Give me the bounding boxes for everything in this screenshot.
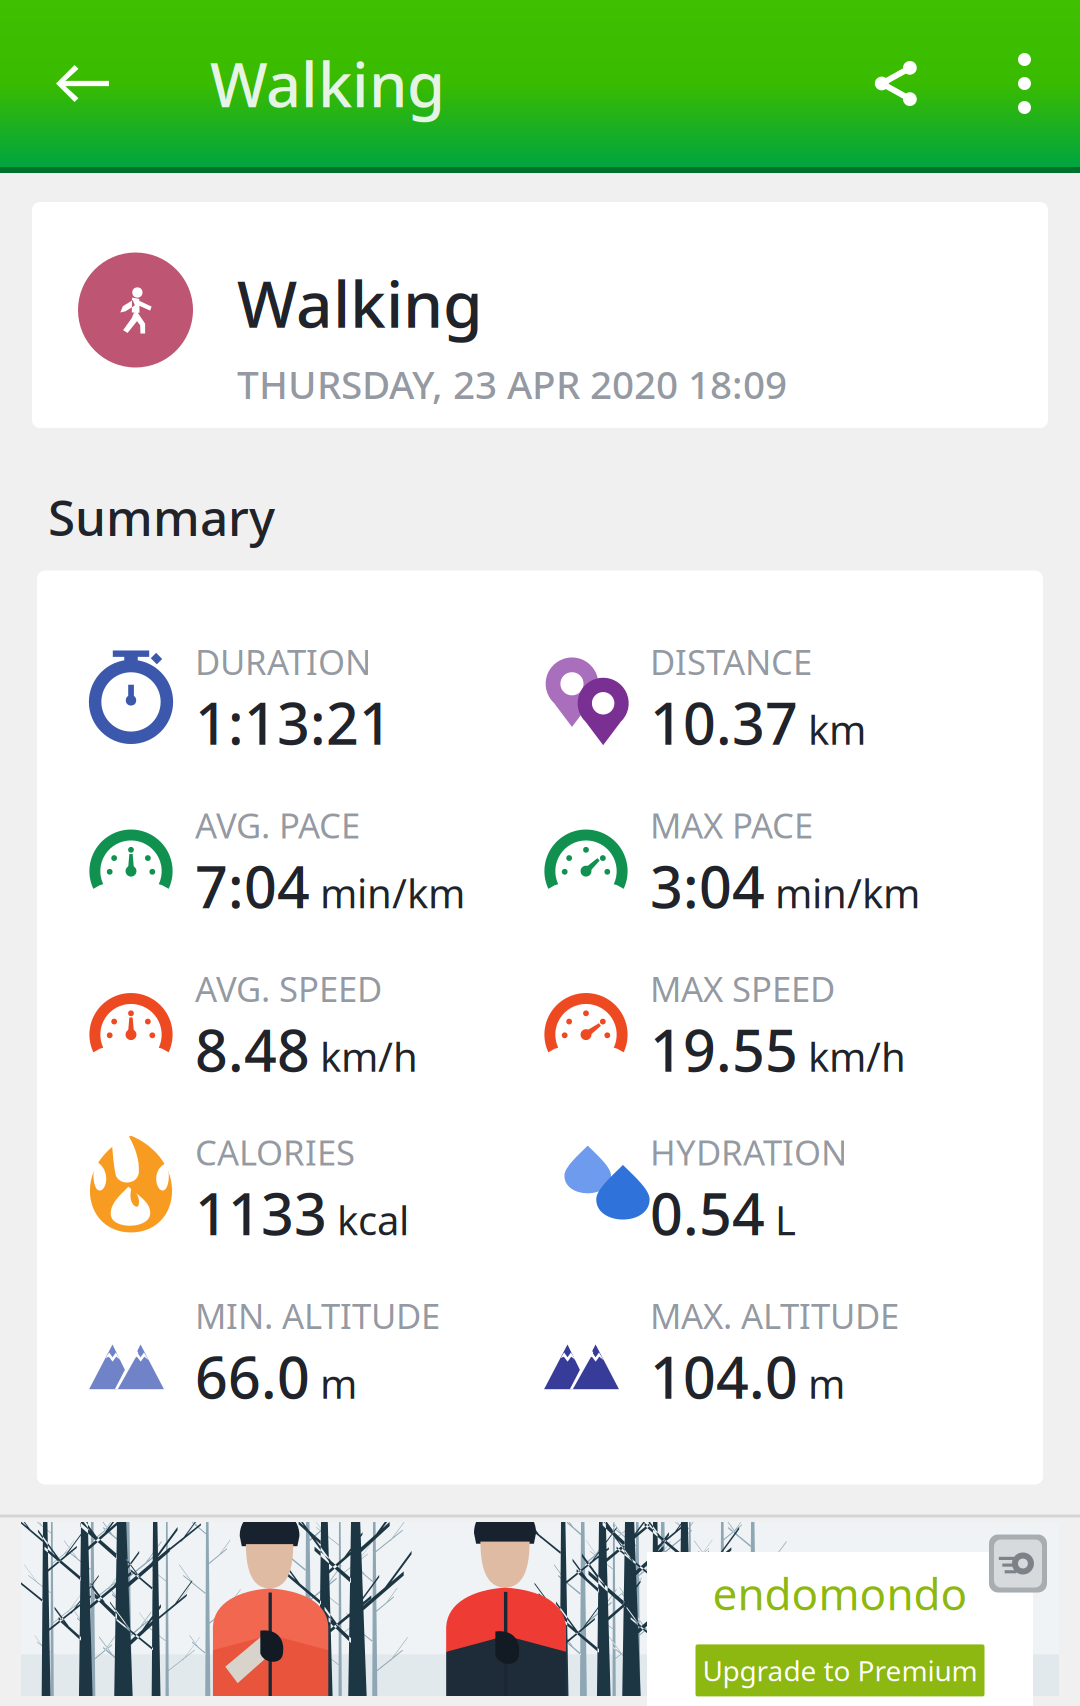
staticText: Walking bbox=[237, 260, 483, 345]
staticText: 19.55 bbox=[650, 1011, 798, 1088]
staticText: 1133 bbox=[195, 1175, 327, 1251]
button[interactable]: Share bbox=[821, 0, 969, 167]
staticText: DISTANCE bbox=[650, 638, 812, 684]
staticText: 0.54 bbox=[650, 1175, 765, 1251]
button[interactable]: More options bbox=[969, 0, 1080, 167]
staticText: 10.37 bbox=[650, 684, 798, 761]
staticText: Summary bbox=[48, 484, 275, 549]
staticText: Walking bbox=[210, 43, 445, 124]
button[interactable]: Back bbox=[0, 0, 165, 167]
staticText: km/h bbox=[320, 1030, 418, 1083]
staticText: km/h bbox=[808, 1030, 906, 1083]
staticText: DURATION bbox=[195, 638, 371, 684]
button[interactable]: endomondo bbox=[0, 1527, 1080, 1706]
staticText: min/km bbox=[320, 866, 465, 919]
staticText: 1:13:21 bbox=[195, 684, 392, 761]
staticText: endomondo bbox=[712, 1564, 967, 1622]
staticText: m bbox=[320, 1357, 357, 1410]
staticText: min/km bbox=[775, 866, 920, 919]
staticText: kcal bbox=[337, 1193, 409, 1246]
staticText: km bbox=[808, 703, 866, 756]
staticText: MAX. ALTITUDE bbox=[650, 1292, 899, 1338]
staticText: MAX SPEED bbox=[650, 965, 835, 1011]
staticText: CALORIES bbox=[195, 1129, 355, 1175]
staticText: 7:04 bbox=[195, 848, 310, 924]
staticText: L bbox=[775, 1193, 796, 1246]
staticText: AVG. PACE bbox=[195, 802, 360, 848]
staticText: 66.0 bbox=[195, 1338, 310, 1415]
staticText: AVG. SPEED bbox=[195, 965, 382, 1011]
staticText: 104.0 bbox=[650, 1338, 798, 1415]
staticText: 8.48 bbox=[195, 1011, 310, 1088]
staticText: Upgrade to Premium bbox=[702, 1652, 977, 1689]
staticText: HYDRATION bbox=[650, 1129, 847, 1175]
staticText: m bbox=[808, 1357, 845, 1410]
staticText: MAX PACE bbox=[650, 802, 813, 848]
staticText: MIN. ALTITUDE bbox=[195, 1292, 440, 1338]
staticText: 3:04 bbox=[650, 848, 765, 924]
staticText: THURSDAY, 23 APR 2020 18:09 bbox=[237, 358, 787, 410]
